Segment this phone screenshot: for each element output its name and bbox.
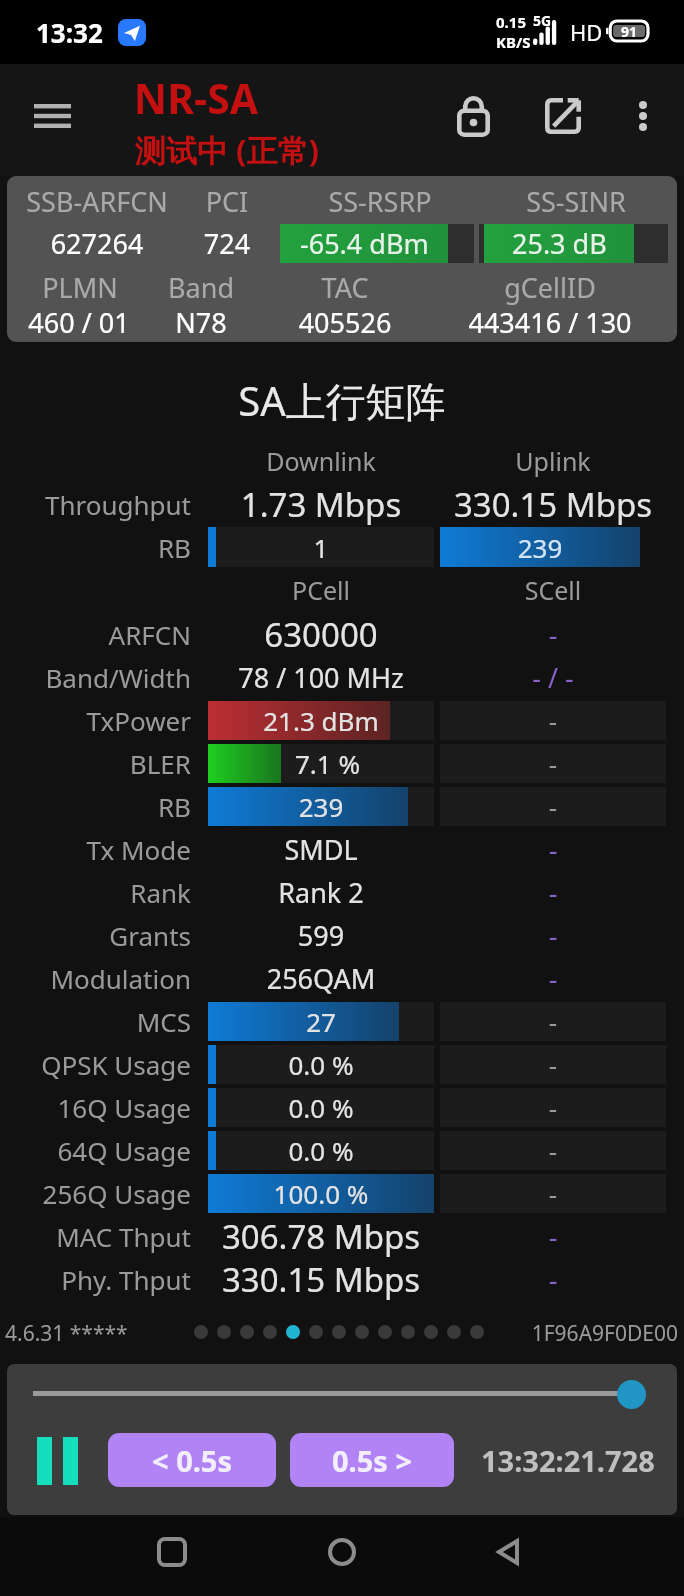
staticText: TAC: [255, 269, 435, 306]
staticText: BLER: [0, 746, 191, 781]
staticText: 91: [621, 22, 638, 41]
button[interactable]: Back: [473, 1517, 543, 1587]
staticText: - / -: [433, 659, 673, 696]
staticText: -: [433, 703, 673, 738]
staticText: SCell: [403, 573, 684, 607]
staticText: Grants: [0, 918, 191, 953]
staticText: 100.0 %: [201, 1176, 441, 1211]
staticText: 239: [201, 789, 441, 824]
staticText: 330.15 Mbps: [388, 482, 684, 527]
staticText: 460 / 01: [7, 304, 189, 341]
staticText: 16Q Usage: [0, 1090, 191, 1125]
staticText: MAC Thput: [0, 1219, 191, 1254]
button[interactable]: More options: [603, 70, 683, 162]
staticText: -: [433, 917, 673, 954]
staticText: QPSK Usage: [0, 1047, 191, 1082]
staticText: RB: [0, 789, 191, 824]
staticText: PCell: [171, 573, 471, 607]
button[interactable]: Open navigation menu: [8, 70, 96, 162]
staticText: N78: [121, 304, 281, 341]
staticText: PLMN: [7, 269, 180, 306]
button[interactable]: Share: [518, 70, 608, 162]
staticText: 443416 / 130: [400, 304, 677, 341]
staticText: Tx Mode: [0, 832, 191, 867]
staticText: TxPower: [0, 703, 191, 738]
staticText: 0.0 %: [201, 1133, 441, 1168]
staticText: MCS: [0, 1004, 191, 1039]
staticText: Modulation: [0, 961, 191, 996]
staticText: Rank: [0, 875, 191, 910]
staticText: 0.0 %: [201, 1047, 441, 1082]
staticText: Throughput: [0, 487, 191, 522]
staticText: SSB-ARFCN: [7, 183, 227, 220]
staticText: gCellID: [430, 269, 670, 306]
staticText: 21.3 dBm: [201, 703, 441, 738]
staticText: -: [433, 831, 673, 868]
staticText: 测试中 (正常): [17, 129, 437, 171]
staticText: 7.1 %: [295, 746, 455, 781]
staticText: 256QAM: [151, 960, 491, 997]
staticText: Downlink: [171, 444, 471, 478]
staticText: Band: [121, 269, 281, 306]
staticText: -: [433, 789, 673, 824]
staticText: -: [433, 960, 673, 997]
staticText: SMDL: [151, 831, 491, 868]
staticText: 599: [151, 917, 491, 954]
staticText: 78 / 100 MHz: [151, 659, 491, 696]
staticText: SS-RSRP: [270, 183, 490, 220]
button[interactable]: Pause: [31, 1430, 91, 1492]
staticText: 405526: [245, 304, 445, 341]
staticText: KB/S: [496, 32, 531, 52]
staticText: 4.6.31 *****: [5, 1319, 225, 1348]
button[interactable]: Lock screen: [428, 70, 518, 162]
staticText: Uplink: [403, 444, 684, 478]
staticText: 13:32:21.728: [481, 1441, 655, 1480]
staticText: ARFCN: [0, 617, 191, 652]
button[interactable]: < 0.5s: [108, 1433, 276, 1487]
staticText: 5G: [533, 11, 552, 30]
staticText: Band/Width: [0, 660, 191, 695]
staticText: 1: [221, 530, 421, 565]
staticText: -: [433, 1133, 673, 1168]
staticText: NR-SA: [36, 70, 356, 122]
staticText: 1.73 Mbps: [161, 482, 481, 527]
staticText: 256Q Usage: [0, 1176, 191, 1211]
staticText: 630000: [151, 612, 491, 657]
staticText: 13:32: [36, 15, 156, 50]
staticText: HD: [570, 17, 630, 47]
button[interactable]: Timeline position: [617, 1380, 646, 1409]
staticText: 306.78 Mbps: [151, 1214, 491, 1259]
staticText: Rank 2: [151, 874, 491, 911]
staticText: -: [433, 1090, 673, 1125]
button[interactable]: Recent apps: [137, 1517, 207, 1587]
staticText: -: [433, 1176, 673, 1211]
button[interactable]: 0.5s >: [290, 1433, 454, 1487]
staticText: 27: [201, 1004, 441, 1039]
staticText: 330.15 Mbps: [151, 1257, 491, 1302]
staticText: SS-SINR: [466, 183, 677, 220]
staticText: -: [433, 1047, 673, 1082]
staticText: 0.5s >: [332, 1441, 413, 1480]
staticText: 25.3 dB: [512, 225, 607, 262]
staticText: -: [433, 1261, 673, 1298]
staticText: -: [433, 874, 673, 911]
staticText: 64Q Usage: [0, 1133, 191, 1168]
staticText: -: [433, 616, 673, 653]
staticText: PCI: [167, 183, 287, 220]
staticText: 627264: [7, 225, 227, 262]
staticText: -65.4 dBm: [300, 225, 429, 262]
staticText: SA上行矩阵: [72, 373, 612, 425]
staticText: < 0.5s: [152, 1441, 233, 1480]
staticText: -: [433, 1004, 673, 1039]
staticText: 0.0 %: [201, 1090, 441, 1125]
staticText: -: [433, 1218, 673, 1255]
button[interactable]: Home: [307, 1517, 377, 1587]
staticText: 0.15: [496, 12, 526, 32]
staticText: RB: [0, 530, 191, 565]
staticText: Phy. Thput: [0, 1262, 191, 1297]
staticText: 724: [167, 225, 287, 262]
staticText: 239: [440, 530, 640, 565]
staticText: -: [433, 746, 673, 781]
staticText: 1F96A9F0DE00: [418, 1319, 678, 1348]
